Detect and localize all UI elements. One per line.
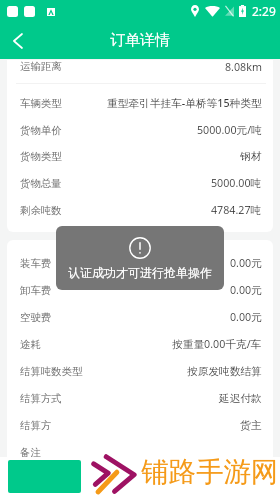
button[interactable]: 货物总量 xyxy=(7,170,273,197)
staticText: 结算方式 xyxy=(20,392,62,405)
staticText: 运输距离 xyxy=(20,60,62,73)
button[interactable]: 货物类型 xyxy=(7,143,273,170)
button[interactable]: 结算方 xyxy=(7,412,273,439)
staticText: 5000.00元/吨 xyxy=(197,123,262,138)
button[interactable]: 备注 xyxy=(7,439,273,466)
button[interactable]: 途耗 xyxy=(7,331,273,358)
button[interactable]: 车辆类型 xyxy=(7,90,273,117)
staticText: 货物总量 xyxy=(20,177,62,190)
button[interactable]: 剩余吨数 xyxy=(7,197,273,223)
button[interactable]: 空驶费 xyxy=(7,304,273,331)
button[interactable]: 结算吨数类型 xyxy=(7,358,273,385)
staticText: 车辆类型 xyxy=(20,97,62,110)
button[interactable]: 装车费 xyxy=(7,250,273,277)
staticText: 剩余吨数 xyxy=(20,204,62,217)
button[interactable]: 卸车费 xyxy=(7,277,273,304)
staticText: 重型牵引半挂车-单桥等15种类型 xyxy=(107,96,262,111)
staticText: 铺路手游网 xyxy=(141,455,279,490)
staticText: 0.00元 xyxy=(230,283,262,298)
staticText: 8.08km xyxy=(225,60,262,73)
staticText: 结算吨数类型 xyxy=(20,365,83,378)
staticText: 认证成功才可进行抢单操作 xyxy=(68,265,212,280)
staticText: 钢材 xyxy=(240,150,262,163)
button[interactable]: 运输距离 xyxy=(7,60,273,73)
staticText: 备注 xyxy=(20,446,41,459)
staticText: 卸车费 xyxy=(20,284,52,297)
staticText: 空驶费 xyxy=(20,311,52,324)
button[interactable]: 结算方式 xyxy=(7,385,273,412)
staticText: 货物单价 xyxy=(20,124,62,137)
staticText: 货主 xyxy=(240,419,262,432)
staticText: 装车费 xyxy=(20,257,52,270)
staticText: 延迟付款 xyxy=(219,392,262,405)
staticText: 按重量0.00千克/车 xyxy=(172,337,262,352)
button[interactable]: 抢单 xyxy=(8,460,81,493)
staticText: 5000.00吨 xyxy=(211,176,262,191)
staticText: 2:29 xyxy=(252,3,276,19)
staticText: 4784.27吨 xyxy=(211,203,262,218)
staticText: 途耗 xyxy=(20,338,41,351)
staticText: 结算方 xyxy=(20,419,52,432)
staticText: 订单详情 xyxy=(110,31,170,50)
staticText: 按原发吨数结算 xyxy=(187,365,262,378)
button[interactable]: 货物单价 xyxy=(7,117,273,143)
staticText: 0.00元 xyxy=(230,256,262,271)
button[interactable]: Back xyxy=(0,22,34,59)
staticText: 货物类型 xyxy=(20,150,62,163)
staticText: 0.00元 xyxy=(230,310,262,325)
